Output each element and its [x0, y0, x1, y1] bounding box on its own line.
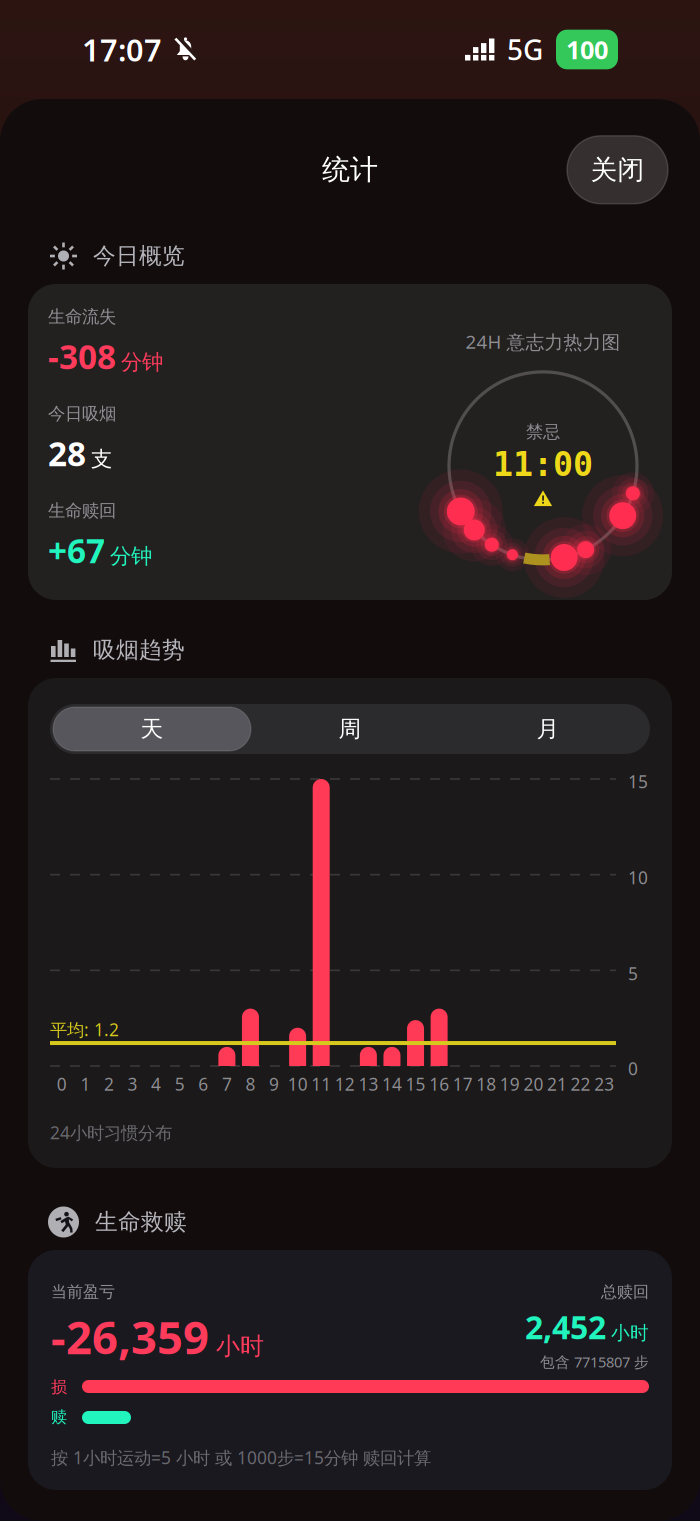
staticText: 17:07	[82, 29, 162, 70]
staticText: 分钟	[121, 349, 163, 375]
button[interactable]: 天	[53, 707, 251, 751]
staticText: 2,452	[525, 1306, 606, 1348]
staticText: 17	[453, 1072, 473, 1095]
staticText: +67	[48, 528, 105, 573]
staticText: 生命流失	[48, 306, 116, 327]
button[interactable]: 周	[251, 707, 449, 751]
staticText: 15	[628, 770, 648, 793]
staticText: 11:00	[493, 446, 593, 483]
staticText: 生命赎回	[48, 500, 116, 521]
staticText: 月	[536, 715, 559, 743]
staticText: 6	[198, 1072, 208, 1095]
staticText: 禁忌	[526, 421, 560, 443]
staticText: -26,359	[51, 1307, 209, 1367]
button[interactable]: 关闭	[567, 136, 668, 204]
staticText: 21	[547, 1072, 567, 1095]
staticText: 0	[57, 1072, 67, 1095]
staticText: 10	[288, 1072, 308, 1095]
staticText: 分钟	[110, 543, 152, 569]
staticText: 2	[104, 1072, 114, 1095]
staticText: -308	[48, 334, 116, 379]
staticText: 0	[628, 1057, 638, 1080]
staticText: 损	[51, 1377, 67, 1397]
staticText: 100	[566, 33, 608, 66]
staticText: 周	[338, 715, 361, 743]
staticText: 今日吸烟	[48, 403, 116, 424]
staticText: 按 1小时运动=5 小时 或 1000步=15分钟 赎回计算	[51, 1446, 431, 1469]
button[interactable]: 月	[449, 707, 647, 751]
staticText: 1	[80, 1072, 90, 1095]
staticText: 18	[476, 1072, 496, 1095]
staticText: 10	[628, 866, 648, 889]
staticText: 小时	[216, 1332, 264, 1361]
staticText: 当前盈亏	[51, 1282, 115, 1302]
staticText: 统计	[322, 153, 378, 187]
staticText: 28	[48, 431, 86, 476]
staticText: 13	[358, 1072, 378, 1095]
staticText: 4	[151, 1072, 161, 1095]
staticText: 5	[628, 962, 638, 985]
staticText: 赎	[51, 1407, 67, 1427]
staticText: 吸烟趋势	[93, 636, 185, 664]
staticText: 包含 7715807 步	[540, 1352, 649, 1372]
staticText: 总赎回	[601, 1282, 649, 1302]
staticText: 关闭	[590, 153, 644, 186]
staticText: 今日概览	[93, 242, 185, 270]
staticText: 8	[245, 1072, 255, 1095]
staticText: 12	[335, 1072, 355, 1095]
staticText: 16	[429, 1072, 449, 1095]
staticText: 5G	[507, 31, 543, 68]
staticText: 支	[91, 446, 112, 472]
staticText: 14	[382, 1072, 402, 1095]
staticText: 20	[523, 1072, 543, 1095]
staticText: 23	[594, 1072, 614, 1095]
staticText: 7	[222, 1072, 232, 1095]
staticText: 11	[311, 1072, 331, 1095]
staticText: 19	[500, 1072, 520, 1095]
staticText: 24H 意志力热力图	[465, 329, 620, 354]
staticText: 天	[140, 715, 163, 743]
staticText: 15	[405, 1072, 425, 1095]
staticText: 小时	[611, 1322, 649, 1344]
staticText: 9	[269, 1072, 279, 1095]
staticText: 3	[127, 1072, 137, 1095]
staticText: 5	[175, 1072, 185, 1095]
staticText: 生命救赎	[95, 1208, 187, 1236]
staticText: 22	[571, 1072, 591, 1095]
staticText: 平均: 1.2	[50, 1018, 119, 1041]
staticText: 24小时习惯分布	[50, 1121, 172, 1144]
